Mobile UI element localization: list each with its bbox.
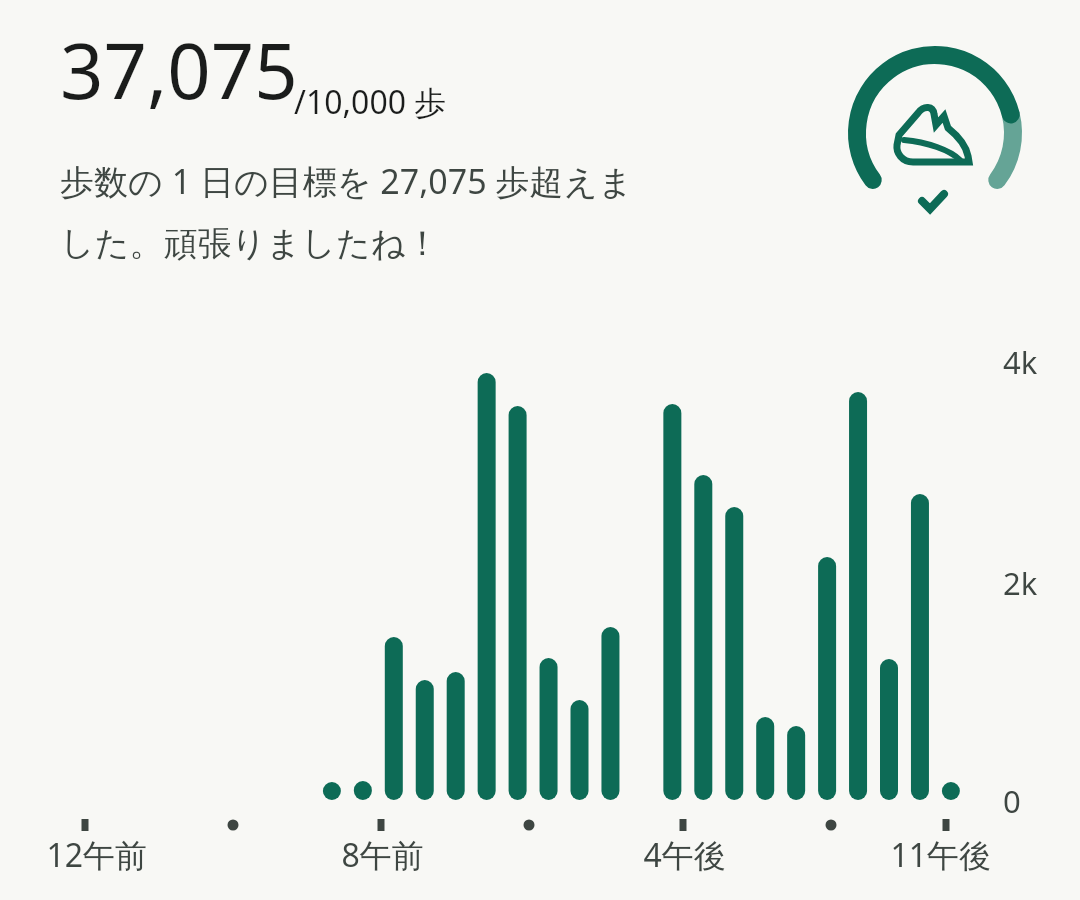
button[interactable]: Steps detail chart <box>0 0 1080 900</box>
